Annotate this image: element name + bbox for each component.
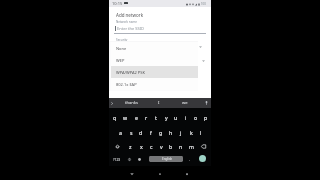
- button[interactable]: o: [191, 110, 201, 124]
- button[interactable]: l: [196, 125, 206, 139]
- button[interactable]: w: [120, 110, 131, 124]
- button[interactable]: s: [126, 125, 136, 139]
- staticText: we: [182, 100, 188, 106]
- staticText: q: [113, 114, 117, 121]
- button[interactable]: Recent apps: [183, 169, 191, 178]
- staticText: o: [194, 114, 198, 121]
- staticText: f: [150, 129, 152, 136]
- button[interactable]: n: [176, 139, 186, 153]
- staticText: g: [159, 129, 163, 136]
- staticText: h: [169, 129, 173, 136]
- staticText: thanks: [125, 100, 138, 106]
- button[interactable]: g: [156, 125, 166, 139]
- button[interactable]: m: [186, 139, 196, 153]
- staticText: u: [174, 114, 178, 121]
- button[interactable]: x: [136, 139, 146, 153]
- button[interactable]: ?123: [112, 152, 121, 166]
- staticText: w: [123, 114, 128, 121]
- button[interactable]: Switch keyboard: [136, 152, 143, 166]
- staticText: j: [180, 129, 182, 136]
- button[interactable]: Show options: [202, 60, 205, 62]
- button[interactable]: 802.1x EAP: [111, 78, 198, 90]
- staticText: 802.1x EAP: [116, 82, 137, 87]
- button[interactable]: u: [171, 110, 181, 124]
- button[interactable]: Back: [128, 169, 136, 178]
- staticText: s: [130, 129, 133, 136]
- button[interactable]: .: [186, 152, 193, 166]
- staticText: None: [116, 46, 127, 51]
- staticText: a: [119, 129, 122, 136]
- staticText: t: [155, 114, 157, 121]
- staticText: r: [145, 114, 148, 121]
- button[interactable]: q: [109, 110, 120, 124]
- staticText: n: [179, 143, 183, 150]
- staticText: b: [169, 143, 173, 150]
- staticText: d: [139, 129, 143, 136]
- button[interactable]: Shift: [109, 139, 125, 153]
- staticText: v: [160, 143, 163, 150]
- button[interactable]: None: [111, 42, 198, 54]
- staticText: p: [204, 114, 208, 121]
- button[interactable]: WPA/WPA2 PSK: [111, 66, 198, 78]
- button[interactable]: English: [149, 156, 183, 162]
- button[interactable]: r: [141, 110, 151, 124]
- staticText: c: [150, 143, 153, 150]
- button[interactable]: d: [136, 125, 146, 139]
- staticText: ?123: [113, 157, 121, 162]
- staticText: I: [158, 100, 160, 106]
- button[interactable]: I: [151, 98, 167, 108]
- button[interactable]: t: [151, 110, 161, 124]
- staticText: y: [165, 114, 168, 121]
- button[interactable]: y: [161, 110, 171, 124]
- button[interactable]: Emoji: [126, 152, 133, 166]
- button[interactable]: More suggestions: [109, 98, 114, 108]
- staticText: Network name: [116, 20, 137, 24]
- button[interactable]: z: [125, 139, 136, 153]
- staticText: WEP: [116, 58, 125, 63]
- staticText: Security: [116, 38, 128, 42]
- button[interactable]: WEP: [111, 54, 198, 66]
- button[interactable]: Home: [156, 169, 164, 178]
- staticText: k: [190, 129, 193, 136]
- button[interactable]: Enter: [199, 155, 206, 162]
- staticText: i: [185, 114, 187, 121]
- staticText: Add network: [116, 12, 144, 18]
- button[interactable]: e: [131, 110, 141, 124]
- button[interactable]: j: [176, 125, 186, 139]
- staticText: x: [140, 143, 143, 150]
- button[interactable]: p: [201, 110, 211, 124]
- button[interactable]: a: [115, 125, 126, 139]
- button[interactable]: b: [166, 139, 176, 153]
- staticText: WPA/WPA2 PSK: [116, 70, 145, 75]
- button[interactable]: Voice input: [203, 98, 209, 108]
- staticText: Enter the SSID: [117, 26, 144, 31]
- button[interactable]: f: [146, 125, 156, 139]
- button[interactable]: Backspace: [196, 139, 211, 153]
- button[interactable]: k: [186, 125, 196, 139]
- staticText: z: [129, 143, 132, 150]
- button[interactable]: h: [166, 125, 176, 139]
- staticText: English: [162, 157, 173, 161]
- button[interactable]: c: [146, 139, 156, 153]
- button[interactable]: v: [156, 139, 166, 153]
- button[interactable]: we: [177, 98, 193, 108]
- staticText: m: [189, 143, 194, 150]
- button[interactable]: thanks: [123, 98, 139, 108]
- button[interactable]: Show options: [199, 46, 202, 48]
- staticText: 10:15: [112, 1, 123, 6]
- staticText: .: [189, 157, 191, 162]
- staticText: e: [135, 114, 138, 121]
- staticText: 100: [201, 2, 206, 6]
- staticText: l: [200, 129, 202, 136]
- button[interactable]: i: [181, 110, 191, 124]
